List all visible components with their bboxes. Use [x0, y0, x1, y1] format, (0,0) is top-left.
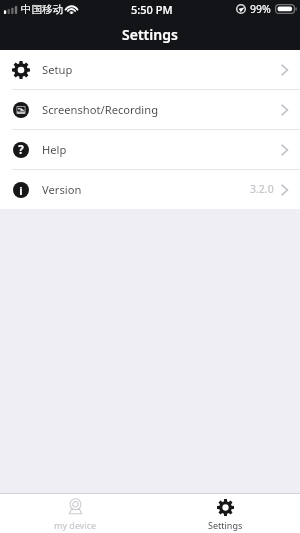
button[interactable]: ? [0, 130, 300, 169]
staticText: 中国移动 [21, 3, 63, 16]
staticText: 3.2.0 [250, 182, 274, 196]
button[interactable]: Settings [150, 494, 300, 533]
staticText: 5:50 PM [131, 2, 173, 17]
button[interactable]: my device [0, 494, 150, 533]
staticText: Settings [208, 519, 243, 531]
staticText: Help [42, 142, 67, 157]
staticText: Version [42, 182, 82, 197]
button[interactable]: Setup [0, 50, 300, 89]
staticText: ? [18, 142, 24, 158]
staticText: 99% [250, 2, 271, 16]
staticText: i [19, 183, 23, 198]
staticText: Screenshot/Recording [42, 102, 159, 117]
button[interactable]: Screenshot/Recording [0, 90, 300, 129]
staticText: my device [54, 519, 97, 531]
button[interactable]: i [0, 170, 300, 209]
staticText: Setup [42, 62, 73, 77]
staticText: Settings [122, 25, 178, 44]
